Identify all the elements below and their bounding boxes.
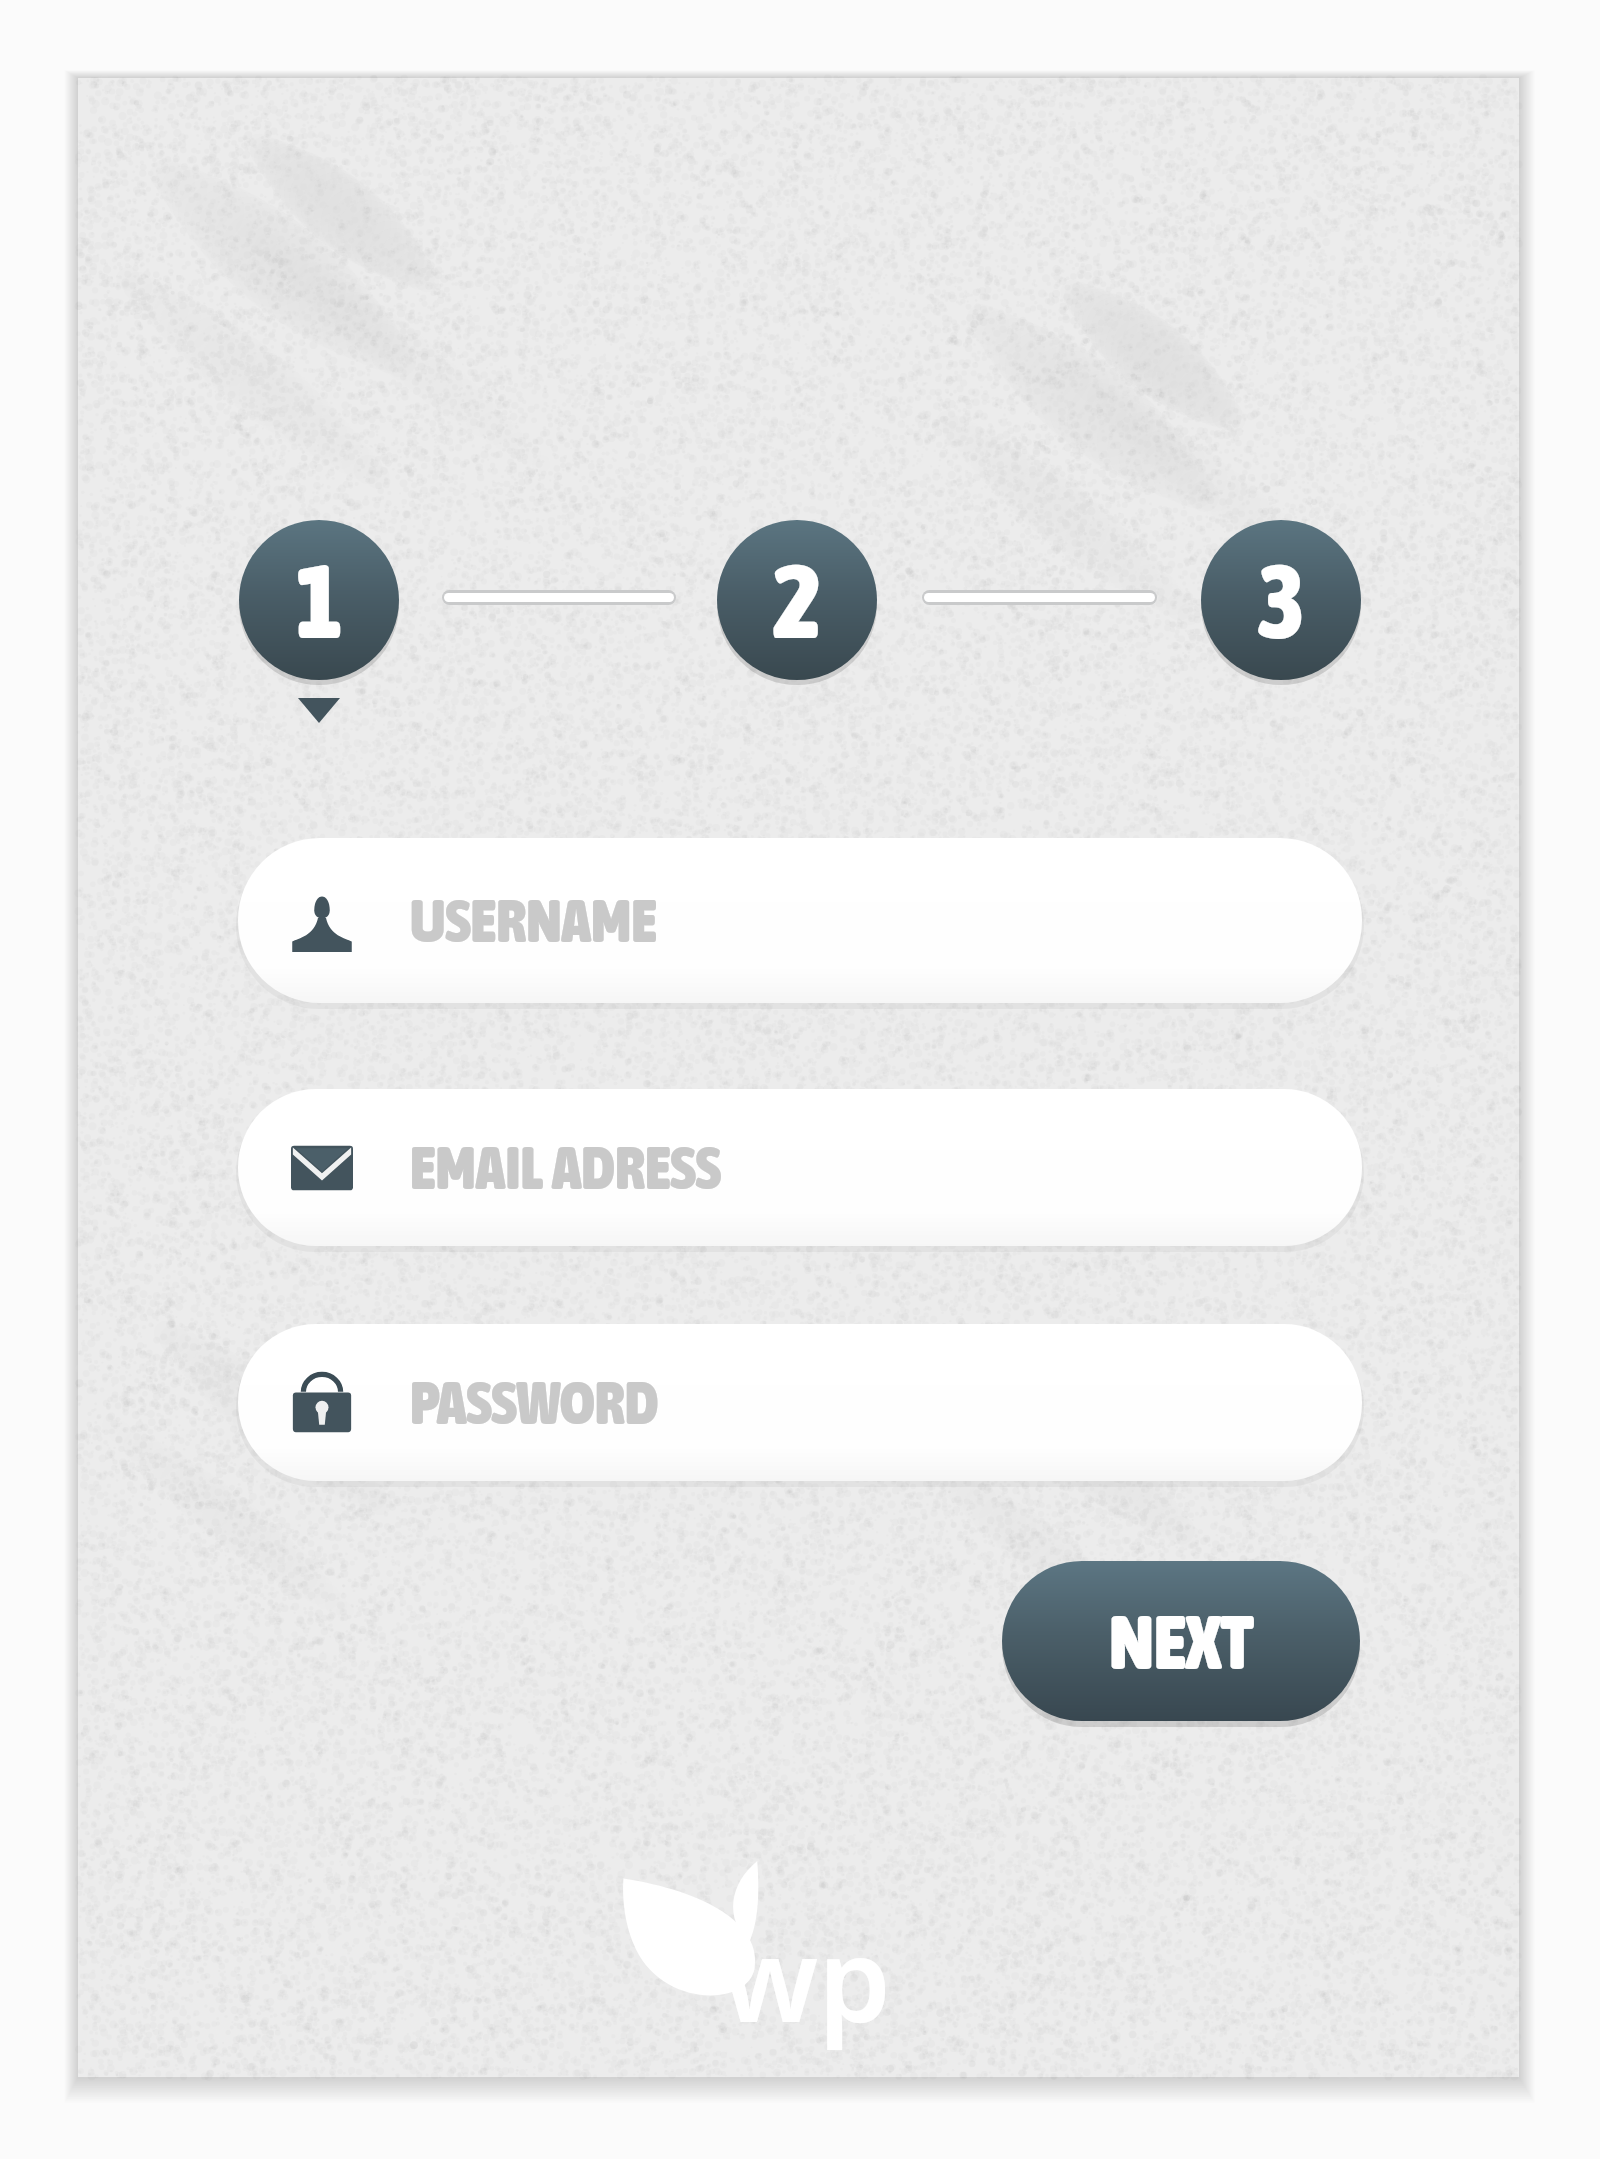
button[interactable]: USERNAME [238,838,1362,1003]
button[interactable]: PASSWORD [238,1324,1362,1481]
staticText: 3 [1257,541,1306,660]
staticText: wp [722,1898,891,2056]
staticText: 2 [773,541,822,660]
staticText: 1 [295,541,344,660]
button[interactable]: EMAIL ADRESS [238,1089,1362,1246]
button[interactable]: Step 3 [1201,520,1361,680]
staticText: NEXT [1109,1598,1254,1685]
staticText: PASSWORD [410,1368,659,1437]
staticText: USERNAME [410,886,657,955]
button[interactable]: Step 2 [717,520,877,680]
other: Current step [298,698,340,723]
button[interactable]: NEXT [1002,1561,1360,1721]
button[interactable]: Step 1 [239,520,399,680]
other: wp logo [622,1876,922,2041]
staticText: EMAIL ADRESS [410,1133,721,1202]
